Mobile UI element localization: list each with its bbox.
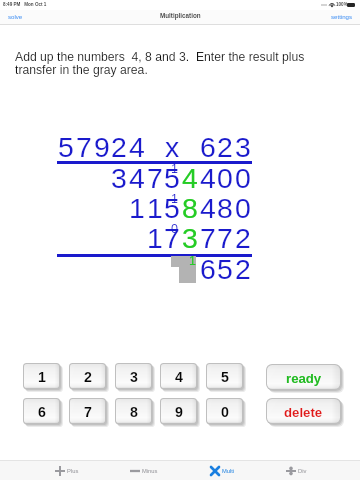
- staticText: 6: [199, 253, 217, 285]
- button[interactable]: 6: [24, 399, 59, 423]
- staticText: settings: [331, 13, 353, 20]
- staticText: 5: [216, 253, 234, 285]
- staticText: 3: [181, 222, 199, 254]
- staticText: 5: [163, 192, 181, 224]
- button[interactable]: 3: [116, 364, 151, 388]
- staticText: 0: [234, 162, 252, 194]
- button[interactable]: 5: [207, 364, 242, 388]
- staticText: Div: [298, 468, 307, 474]
- staticText: 4: [128, 162, 146, 194]
- button[interactable]: 2: [70, 364, 105, 388]
- staticText: Multi: [222, 468, 235, 474]
- staticText: 4: [181, 162, 199, 194]
- staticText: x: [163, 131, 181, 163]
- staticText: 0: [171, 222, 178, 236]
- staticText: 2: [234, 222, 252, 254]
- staticText: 7: [84, 404, 92, 420]
- button[interactable]: 0: [207, 399, 242, 423]
- button[interactable]: settings: [326, 10, 358, 23]
- staticText: 5: [163, 162, 181, 194]
- staticText: 5: [221, 369, 229, 385]
- staticText: 8: [130, 404, 138, 420]
- staticText: 100%: [336, 2, 348, 7]
- staticText: 2: [234, 253, 252, 285]
- staticText: 5: [57, 131, 75, 163]
- staticText: solve: [8, 13, 23, 20]
- staticText: 2: [216, 131, 234, 163]
- staticText: Add up the numbers 4, 8 and 3. Enter the…: [15, 50, 305, 77]
- staticText: 1: [171, 162, 178, 176]
- staticText: 4: [199, 162, 217, 194]
- staticText: 2: [110, 131, 128, 163]
- staticText: delete: [284, 405, 323, 420]
- button[interactable]: delete: [267, 399, 340, 423]
- staticText: ready: [286, 371, 322, 386]
- button[interactable]: 4: [161, 364, 196, 388]
- staticText: 3: [130, 369, 138, 385]
- staticText: 7: [216, 222, 234, 254]
- staticText: 7: [163, 222, 181, 254]
- staticText: 9: [93, 131, 111, 163]
- button[interactable]: solve: [2, 10, 28, 23]
- staticText: 4: [175, 369, 183, 385]
- staticText: 6: [199, 131, 217, 163]
- staticText: 0: [216, 162, 234, 194]
- button[interactable]: Minus: [115, 461, 173, 480]
- staticText: 0: [234, 192, 252, 224]
- staticText: 1: [38, 369, 46, 385]
- staticText: 7: [75, 131, 93, 163]
- staticText: 8: [216, 192, 234, 224]
- staticText: Plus: [67, 468, 79, 474]
- staticText: 3: [110, 162, 128, 194]
- button[interactable]: 8: [116, 399, 151, 423]
- staticText: 4: [199, 192, 217, 224]
- staticText: 0: [221, 404, 229, 420]
- staticText: 8: [181, 192, 199, 224]
- staticText: 8:49 PM Mon Oct 1: [3, 2, 47, 7]
- staticText: 9: [175, 404, 183, 420]
- button[interactable]: 7: [70, 399, 105, 423]
- staticText: 4: [128, 131, 146, 163]
- staticText: 1: [146, 192, 164, 224]
- staticText: Multiplication: [160, 12, 201, 19]
- staticText: 3: [234, 131, 252, 163]
- button[interactable]: ready: [267, 365, 340, 389]
- button[interactable]: 1: [24, 364, 59, 388]
- staticText: 1: [171, 192, 178, 206]
- staticText: 1: [146, 222, 164, 254]
- button[interactable]: Div: [271, 461, 329, 480]
- staticText: 1: [189, 254, 196, 268]
- staticText: Minus: [142, 468, 158, 474]
- staticText: 2: [84, 369, 92, 385]
- button[interactable]: 9: [161, 399, 196, 423]
- staticText: 1: [128, 192, 146, 224]
- staticText: 7: [199, 222, 217, 254]
- staticText: 7: [146, 162, 164, 194]
- button[interactable]: Plus: [40, 461, 98, 480]
- staticText: 6: [38, 404, 46, 420]
- button[interactable]: Multi: [195, 461, 253, 480]
